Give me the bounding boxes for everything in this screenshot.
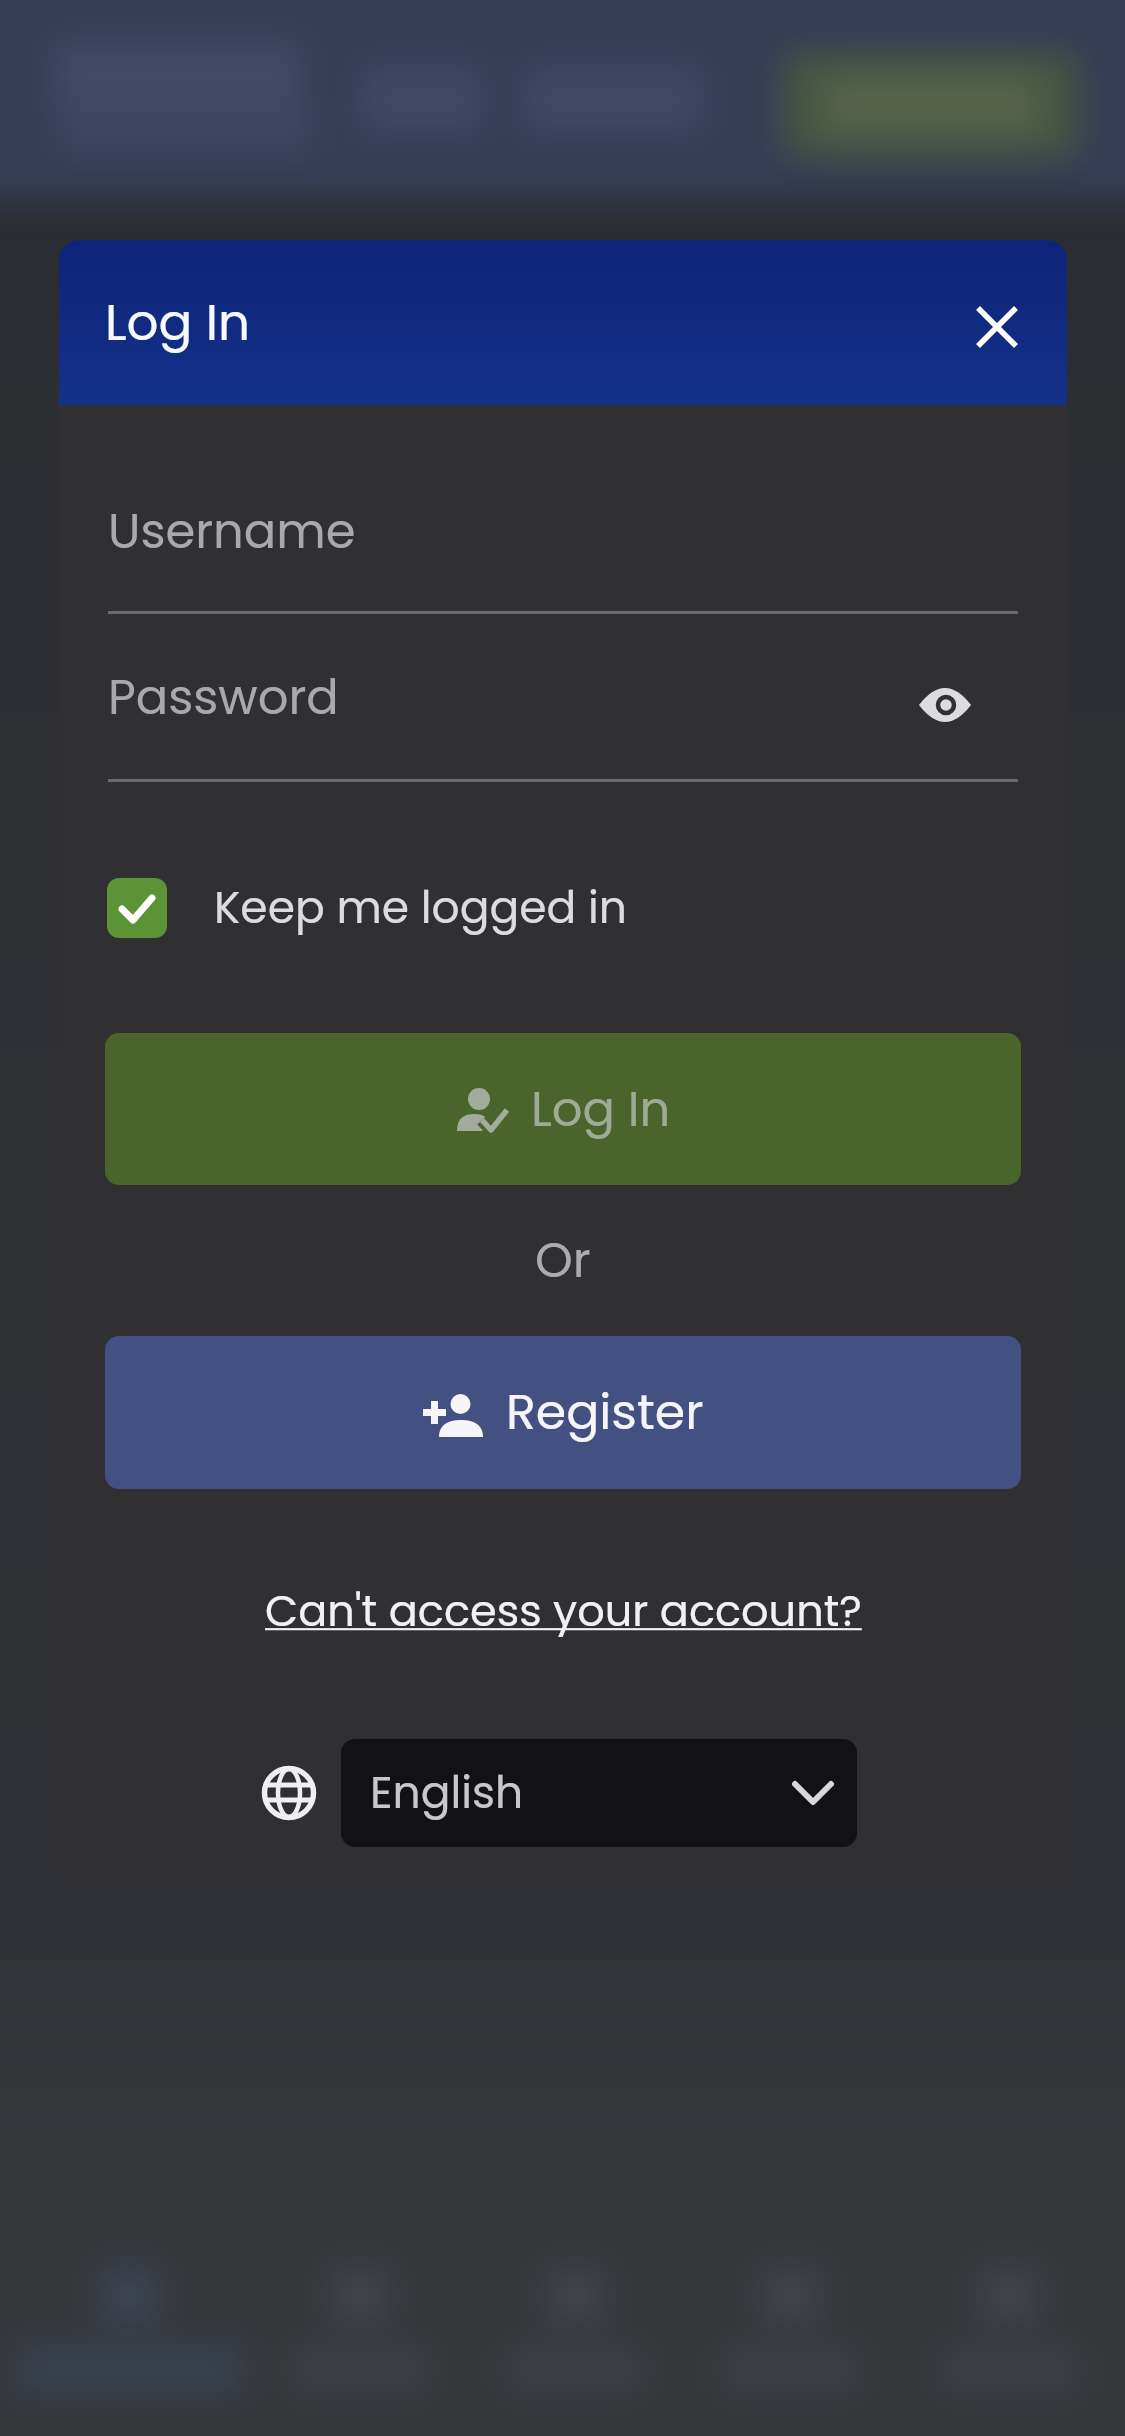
button[interactable]: Keep me logged in — [107, 858, 827, 958]
button[interactable]: English — [341, 1739, 857, 1847]
staticText: Log In — [531, 1076, 671, 1143]
staticText: Username — [108, 498, 356, 565]
staticText: Log In — [105, 288, 251, 358]
button[interactable]: Log In — [105, 1033, 1021, 1185]
button[interactable]: Can't access your account? — [265, 1581, 862, 1641]
button[interactable] — [910, 675, 980, 735]
button[interactable]: Register — [105, 1336, 1021, 1489]
staticText: Can't access your account? — [265, 1581, 862, 1641]
staticText: Or — [535, 1227, 591, 1287]
button[interactable]: Username — [108, 475, 1018, 615]
staticText: Password — [108, 664, 339, 731]
button[interactable] — [957, 287, 1037, 367]
staticText: Register — [506, 1378, 704, 1447]
staticText: Keep me logged in — [214, 877, 627, 939]
staticText: English — [370, 1762, 524, 1824]
button[interactable]: Password — [108, 641, 1018, 781]
